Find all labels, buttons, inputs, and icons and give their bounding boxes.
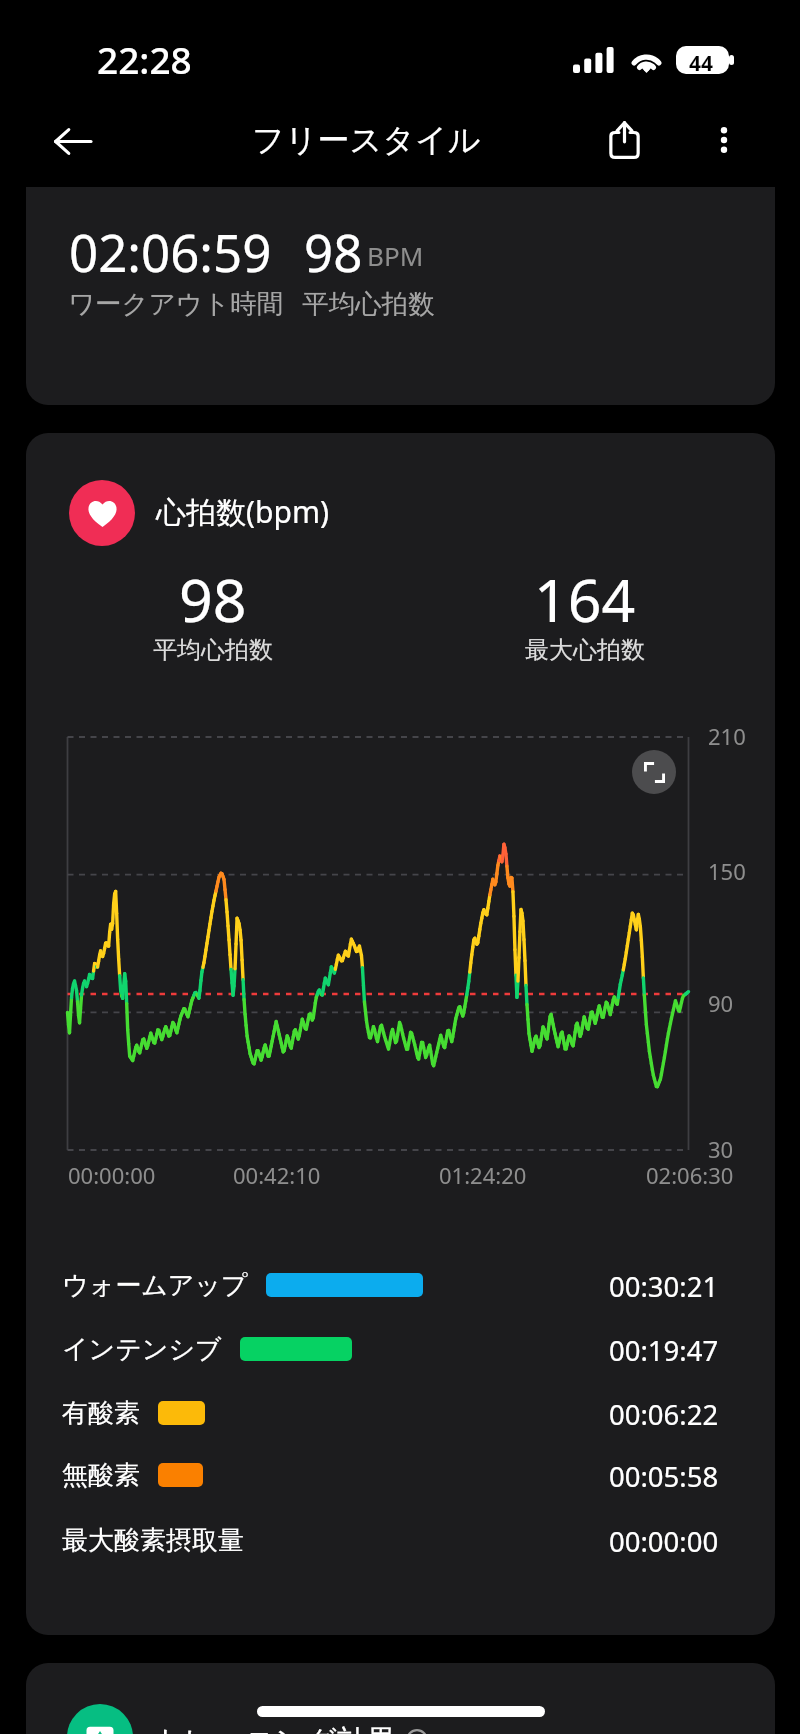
staticText: 00:19:47 bbox=[609, 1332, 719, 1369]
staticText: ワークアウト時間 bbox=[68, 287, 284, 320]
button[interactable]: 心拍数(bpm) bbox=[26, 433, 775, 1635]
staticText: 最大酸素摂取量 bbox=[62, 1524, 244, 1557]
button[interactable]: Share bbox=[590, 105, 658, 173]
staticText: ウォームアップ bbox=[62, 1269, 248, 1302]
button[interactable]: トレーニング効果 bbox=[26, 1663, 775, 1734]
staticText: 90 bbox=[708, 988, 734, 1018]
staticText: 心拍数(bpm) bbox=[156, 491, 329, 532]
staticText: 30 bbox=[708, 1134, 734, 1164]
staticText: 98 bbox=[304, 217, 363, 286]
staticText: 無酸素 bbox=[62, 1459, 140, 1492]
staticText: 44 bbox=[689, 49, 714, 78]
button[interactable]: Back bbox=[38, 107, 106, 175]
button[interactable]: Expand chart bbox=[632, 750, 676, 794]
staticText: 210 bbox=[708, 721, 746, 751]
staticText: トレーニング効果 bbox=[153, 1722, 397, 1734]
staticText: 164 bbox=[534, 559, 636, 639]
staticText: 01:24:20 bbox=[439, 1160, 527, 1190]
button[interactable]: 02:06:59 bbox=[26, 187, 775, 405]
staticText: 00:30:21 bbox=[609, 1268, 719, 1305]
staticText: 150 bbox=[708, 856, 746, 886]
staticText: 00:05:58 bbox=[609, 1458, 719, 1495]
staticText: 98 bbox=[179, 559, 247, 639]
staticText: 00:00:00 bbox=[609, 1523, 719, 1560]
staticText: フリースタイル bbox=[252, 120, 481, 160]
staticText: 02:06:59 bbox=[69, 217, 272, 286]
staticText: 最大心拍数 bbox=[525, 635, 645, 665]
staticText: BPM bbox=[367, 238, 424, 273]
button[interactable]: More options bbox=[690, 106, 758, 174]
staticText: 平均心拍数 bbox=[302, 287, 435, 320]
staticText: 平均心拍数 bbox=[153, 635, 273, 665]
staticText: 00:00:00 bbox=[68, 1160, 156, 1190]
staticText: 00:42:10 bbox=[233, 1160, 321, 1190]
staticText: 00:06:22 bbox=[609, 1396, 719, 1433]
staticText: インテンシブ bbox=[62, 1333, 222, 1366]
staticText: 有酸素 bbox=[62, 1397, 140, 1430]
staticText: 02:06:30 bbox=[646, 1160, 734, 1190]
staticText: 22:28 bbox=[97, 34, 192, 84]
